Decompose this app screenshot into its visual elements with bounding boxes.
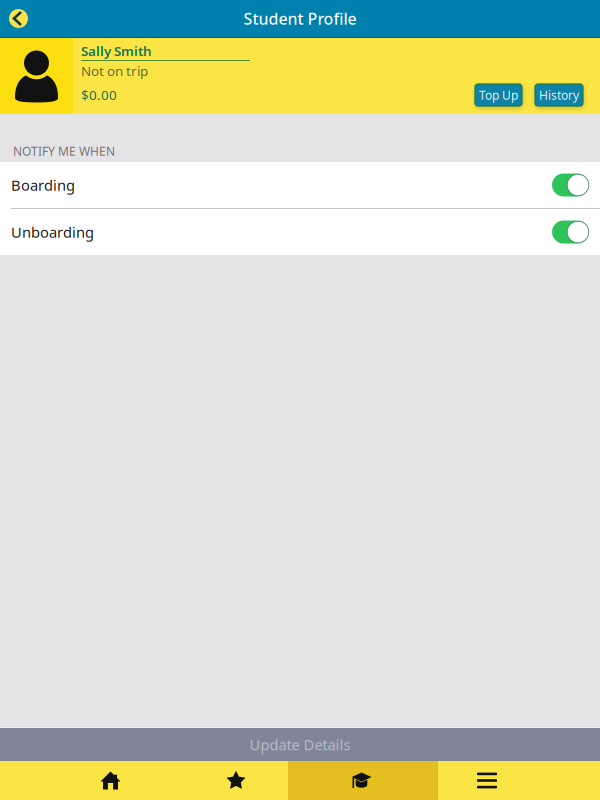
button[interactable]: Update Details [0,728,600,761]
staticText: NOTIFY ME WHEN [13,143,115,159]
button[interactable]: History [535,84,583,106]
button[interactable]: Home [48,761,173,800]
staticText: Top Up [479,87,518,103]
staticText: Sally Smith [81,42,152,60]
staticText: Unboarding [11,222,94,242]
staticText: Update Details [249,735,350,754]
button[interactable]: Favourites [173,761,298,800]
staticText: Student Profile [243,8,356,29]
button[interactable]: Back [0,9,28,28]
button[interactable]: Menu [424,761,549,800]
staticText: Not on trip [81,62,148,80]
button[interactable]: Students [299,761,424,800]
staticText: Boarding [11,175,75,195]
staticText: History [539,87,579,103]
staticText: $0.00 [81,86,117,104]
button[interactable]: Top Up [475,84,522,106]
